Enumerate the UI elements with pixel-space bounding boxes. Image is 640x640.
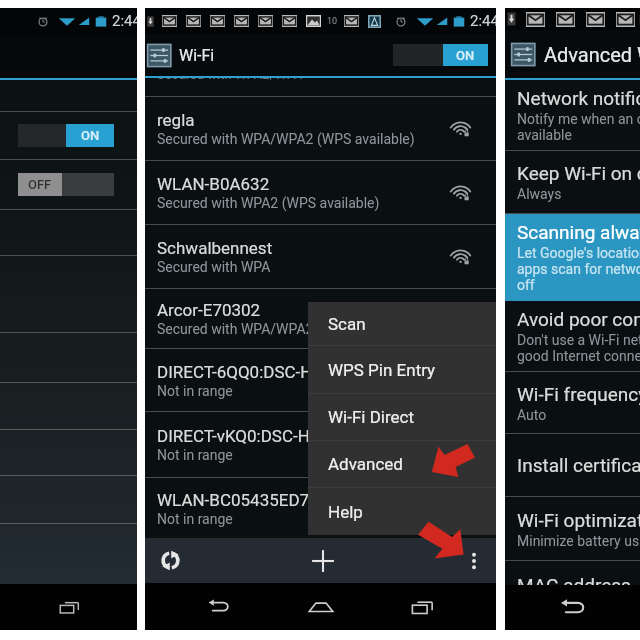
button[interactable]: Back — [191, 587, 247, 627]
staticText: Avoid poor connections — [517, 308, 640, 330]
staticText: good Internet connection — [517, 348, 640, 364]
staticText: Secured with WPA2/WPA — [157, 78, 303, 82]
staticText: Minimize battery usage when Wi-Fi is on — [517, 533, 640, 549]
button[interactable]: Scanning always available — [505, 214, 640, 301]
staticText: Secured with WPA2 (WPS available) — [157, 195, 380, 211]
button[interactable]: Secured with WPA2/WPA — [145, 78, 496, 96]
button[interactable]: MAC address — [505, 561, 640, 585]
staticText: Secured with WPA/WPA2 (WPS available) — [157, 321, 415, 337]
button[interactable]: Avoid poor connections — [505, 301, 640, 371]
staticText: WPS Pin Entry — [328, 360, 436, 380]
button[interactable]: More options — [452, 538, 496, 583]
staticText: Not in range — [157, 447, 233, 463]
button[interactable]: DIRECT-vKQ0:DSC-HX400V — [145, 412, 496, 477]
staticText: apps scan for networks, even when Wi-Fi … — [517, 261, 640, 277]
staticText: 2:44 — [112, 12, 137, 30]
button[interactable]: Recent apps — [46, 587, 92, 627]
staticText: Network notification — [517, 87, 640, 109]
button[interactable]: Keep Wi-Fi on during sleep — [505, 151, 640, 213]
staticText: Wi-Fi — [179, 46, 215, 65]
button[interactable]: Add network — [297, 538, 349, 583]
button[interactable]: WLAN-BC05435ED7DB — [145, 478, 496, 538]
button[interactable]: ON — [18, 124, 114, 147]
button[interactable]: Recent apps — [394, 587, 450, 627]
staticText: Wi-Fi frequency band — [517, 383, 640, 405]
button[interactable]: WPS Pin Entry — [308, 346, 496, 393]
staticText: MAC address — [517, 574, 631, 585]
button[interactable]: Install certificates — [505, 434, 640, 496]
button[interactable]: Help — [308, 488, 496, 535]
staticText: WLAN-BC05435ED7DB — [157, 490, 331, 510]
staticText: ON — [81, 128, 100, 143]
staticText: Arcor-E70302 — [157, 300, 261, 320]
button[interactable]: OFF — [18, 173, 114, 196]
button[interactable]: WLAN-B0A632 — [145, 161, 496, 224]
button[interactable]: Wi-Fi frequency band — [505, 372, 640, 433]
staticText: Always — [517, 186, 562, 202]
button[interactable]: Wi-Fi Direct — [308, 394, 496, 440]
button[interactable]: OFF — [0, 160, 137, 209]
staticText: Scan — [328, 314, 366, 334]
staticText: Let Google's location service and other — [517, 245, 640, 261]
button[interactable]: Arcor-E70302 — [145, 289, 496, 348]
staticText: Wi-Fi optimization — [517, 509, 640, 531]
staticText: Scanning always available — [517, 221, 640, 243]
staticText: Notify me when an open network is — [517, 111, 640, 127]
staticText: regla — [157, 110, 195, 130]
button[interactable]: Scan — [308, 302, 496, 345]
staticText: Secured with WPA/WPA2 (WPS available) — [157, 131, 415, 147]
button[interactable]: ON — [0, 112, 137, 159]
staticText: 10 — [327, 16, 338, 27]
staticText: off — [517, 277, 535, 293]
button[interactable]: Home — [293, 587, 349, 627]
staticText: ON — [456, 48, 475, 63]
button[interactable]: Advanced — [308, 441, 496, 487]
staticText: Help — [328, 502, 363, 522]
staticText: Secured with WPA — [157, 259, 271, 275]
staticText: WLAN-B0A632 — [157, 174, 270, 194]
staticText: 2:44 — [470, 12, 496, 30]
staticText: available — [517, 127, 572, 143]
button[interactable]: ON — [393, 44, 488, 66]
staticText: Not in range — [157, 383, 233, 399]
button[interactable]: Wi-Fi optimization — [505, 497, 640, 560]
staticText: Not in range — [157, 511, 233, 527]
staticText: Advanced — [328, 454, 403, 474]
staticText: DIRECT-6QQ0:DSC-HX400V — [157, 362, 363, 382]
staticText: DIRECT-vKQ0:DSC-HX400V — [157, 426, 361, 446]
staticText: OFF — [28, 177, 52, 192]
button[interactable]: DIRECT-6QQ0:DSC-HX400V — [145, 349, 496, 411]
button[interactable]: Network notification — [505, 80, 640, 150]
button[interactable]: Back — [548, 588, 598, 628]
button[interactable]: Schwalbennest — [145, 225, 496, 288]
button[interactable]: Scan — [145, 538, 195, 583]
staticText: Schwalbennest — [157, 238, 273, 258]
staticText: Advanced Wi-Fi — [544, 43, 640, 66]
staticText: Auto — [517, 407, 547, 423]
staticText: Don't use a Wi-Fi network unless it has … — [517, 332, 640, 348]
staticText: Keep Wi-Fi on during sleep — [517, 162, 640, 184]
button[interactable]: regla — [145, 97, 496, 160]
staticText: Install certificates — [517, 454, 640, 476]
staticText: Wi-Fi Direct — [328, 407, 415, 427]
